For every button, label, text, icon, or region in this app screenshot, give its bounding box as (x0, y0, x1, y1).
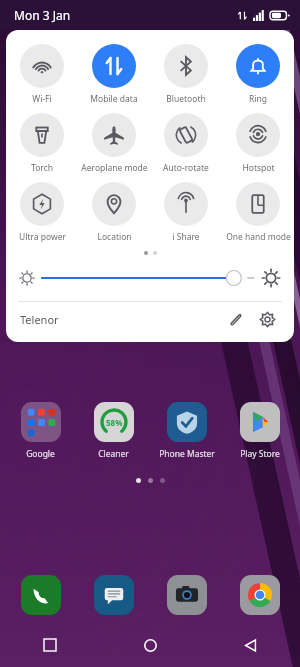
button[interactable]: Location (78, 178, 150, 247)
staticText: Hotspot (242, 162, 275, 174)
button[interactable]: Chrome (223, 575, 296, 615)
button[interactable]: Bluetooth (150, 40, 222, 109)
button[interactable] (42, 267, 254, 289)
button[interactable]: Back (200, 623, 300, 667)
staticText: i Share (172, 231, 200, 243)
button[interactable]: Settings (254, 306, 280, 332)
staticText: Location (97, 231, 132, 243)
staticText: Torch (31, 162, 53, 174)
button[interactable]: One hand mode (222, 178, 294, 247)
staticText: 58% (106, 417, 123, 428)
button[interactable]: Hotspot (222, 109, 294, 178)
button[interactable]: Phone (4, 575, 77, 615)
staticText: Ultra power (19, 231, 66, 243)
button[interactable]: Camera (150, 575, 223, 615)
staticText: One hand mode (226, 231, 291, 243)
staticText: Mobile data (90, 93, 138, 105)
button[interactable]: Mobile data (78, 40, 150, 109)
staticText: Google (26, 448, 55, 460)
button[interactable]: Recents (0, 623, 100, 667)
button[interactable]: Google (4, 402, 77, 460)
button[interactable]: 58% (77, 402, 150, 460)
button[interactable]: Play Store (223, 402, 296, 460)
staticText: Wi-Fi (32, 93, 52, 105)
button[interactable]: i Share (150, 178, 222, 247)
button[interactable]: Aeroplane mode (78, 109, 150, 178)
button[interactable]: Phone Master (150, 402, 223, 460)
staticText: Mon 3 Jan (14, 7, 71, 23)
staticText: Aeroplane mode (81, 162, 148, 174)
button[interactable]: Auto-rotate (150, 109, 222, 178)
button[interactable]: Ultra power (6, 178, 78, 247)
staticText: Phone Master (159, 448, 215, 460)
button[interactable]: Home (100, 623, 200, 667)
staticText: Bluetooth (166, 93, 206, 105)
button[interactable]: Ring (222, 40, 294, 109)
button[interactable]: Wi-Fi (6, 40, 78, 109)
button[interactable]: Messages (77, 575, 150, 615)
button[interactable]: Edit (222, 306, 248, 332)
staticText: Cleaner (98, 448, 129, 460)
staticText: Auto-rotate (163, 162, 209, 174)
button[interactable]: Torch (6, 109, 78, 178)
staticText: Telenor (20, 312, 59, 327)
staticText: Play Store (240, 448, 280, 460)
staticText: Ring (249, 93, 267, 105)
